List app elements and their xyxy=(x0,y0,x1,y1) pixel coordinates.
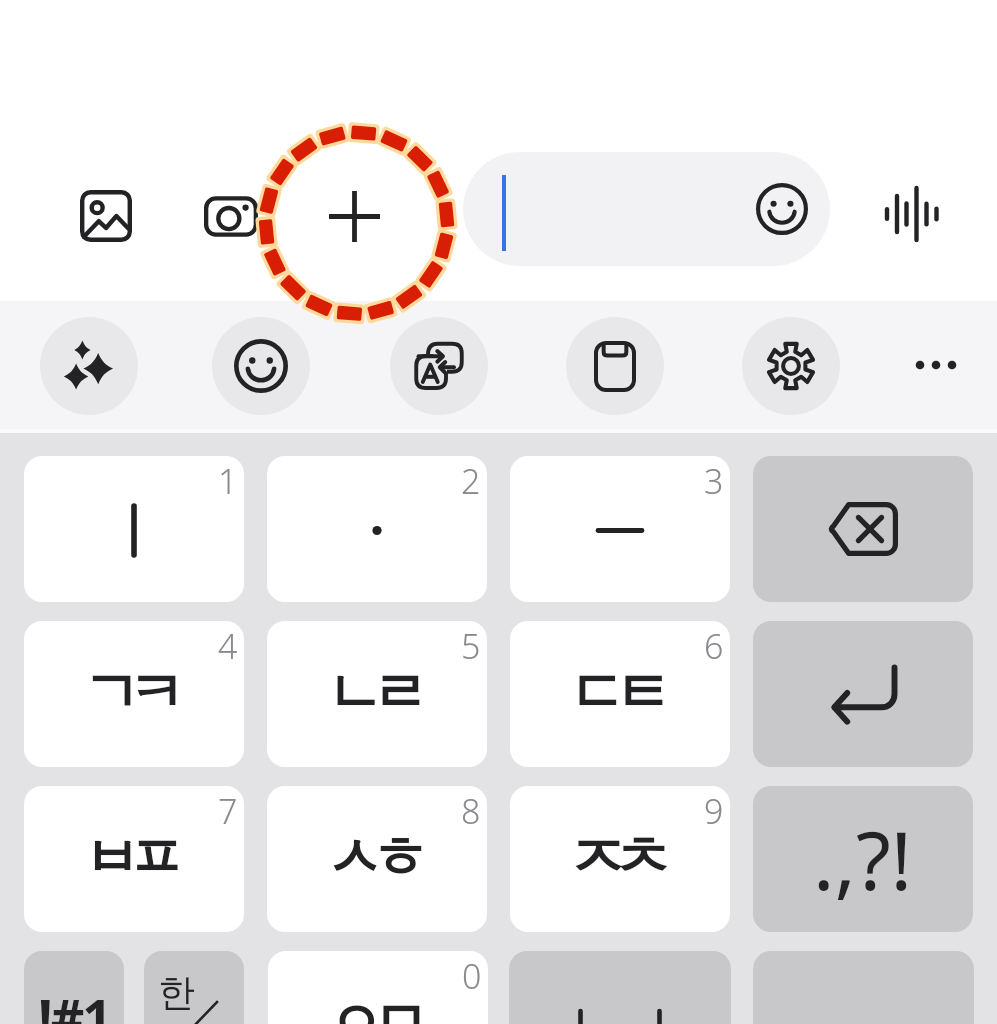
staticText: 2 xyxy=(461,458,481,504)
button[interactable]: 3 xyxy=(510,456,730,602)
staticText: ㅂㅍ xyxy=(89,822,179,894)
button[interactable]: 2 xyxy=(267,456,487,602)
staticText: 한 xyxy=(158,969,195,1016)
button[interactable]: AI suggestions xyxy=(40,317,138,415)
button[interactable]: Vowel xyxy=(509,951,731,1024)
staticText: 1 xyxy=(218,458,238,504)
button[interactable]: Settings xyxy=(742,317,840,415)
staticText: 0 xyxy=(462,953,482,999)
staticText: 9 xyxy=(704,788,724,834)
button[interactable]: Backspace xyxy=(753,456,973,602)
button[interactable]: Camera xyxy=(189,174,273,258)
button[interactable]: 4 xyxy=(24,621,244,767)
button[interactable]: Emoji xyxy=(212,317,310,415)
staticText: 3 xyxy=(704,458,724,504)
staticText: 7 xyxy=(218,788,238,834)
button[interactable]: More xyxy=(888,317,984,413)
button[interactable]: Voice input xyxy=(870,173,954,257)
button[interactable]: 5 xyxy=(267,621,487,767)
button[interactable]: Clipboard xyxy=(566,317,664,415)
button[interactable]: Gallery xyxy=(64,174,148,258)
button[interactable]: Emoji xyxy=(463,152,830,266)
button[interactable]: More options xyxy=(311,173,397,259)
staticText: !#1 xyxy=(38,981,111,1024)
staticText: ㄱㅋ xyxy=(89,657,179,729)
button[interactable]: Emoji xyxy=(752,179,812,239)
button[interactable]: 9 xyxy=(510,786,730,932)
button[interactable]: 8 xyxy=(267,786,487,932)
button[interactable]: Translate xyxy=(390,317,488,415)
staticText: ㅅㅎ xyxy=(332,822,422,894)
staticText: 6 xyxy=(704,623,724,669)
button[interactable]: Language xyxy=(144,951,244,1024)
staticText: .,?! xyxy=(813,804,913,913)
staticText: ㄴㄹ xyxy=(332,657,422,729)
button[interactable]: 1 xyxy=(24,456,244,602)
button[interactable]: !#1 xyxy=(24,951,124,1024)
staticText: ㄷㅌ xyxy=(575,657,665,729)
staticText: 4 xyxy=(218,623,238,669)
staticText: 5 xyxy=(461,623,481,669)
button[interactable]: Enter xyxy=(753,621,973,767)
staticText: ㅈㅊ xyxy=(575,822,665,894)
button[interactable]: 0 xyxy=(268,951,488,1024)
button[interactable]: Punctuation xyxy=(753,786,973,932)
staticText: ㅇㅁ xyxy=(333,987,423,1024)
button[interactable]: 7 xyxy=(24,786,244,932)
staticText: 8 xyxy=(461,788,481,834)
button[interactable]: 6 xyxy=(510,621,730,767)
